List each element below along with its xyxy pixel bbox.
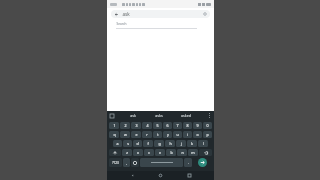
button[interactable]: 2 (120, 122, 130, 129)
staticText: y (167, 132, 169, 137)
button[interactable]: p (203, 131, 212, 138)
button[interactable]: d (133, 140, 142, 147)
button[interactable]: Keyboard settings (109, 113, 114, 118)
button[interactable]: Recent apps (186, 172, 193, 179)
button[interactable]: More options (207, 113, 212, 118)
staticText: t (157, 132, 159, 137)
button[interactable]: m (188, 149, 198, 156)
staticText: o (196, 132, 199, 137)
staticText: a (116, 141, 119, 146)
button[interactable]: ?123 (109, 158, 122, 167)
staticText: l (203, 141, 204, 146)
staticText: j (181, 141, 182, 146)
button[interactable]: asked (179, 112, 193, 119)
staticText: asked (181, 113, 191, 118)
staticText: c (148, 150, 150, 155)
staticText: ask (122, 11, 130, 17)
staticText: 9 (196, 123, 199, 128)
staticText: v (159, 150, 161, 155)
staticText: q (113, 132, 116, 137)
button[interactable]: 6 (163, 122, 172, 129)
button[interactable]: , (123, 158, 130, 167)
button[interactable]: b (166, 149, 176, 156)
button[interactable]: 9 (193, 122, 202, 129)
staticText: . (188, 160, 189, 165)
staticText: w (124, 132, 127, 137)
button[interactable]: 5 (153, 122, 162, 129)
button[interactable]: Home (157, 172, 164, 179)
button[interactable]: o (193, 131, 202, 138)
button[interactable]: 1 (109, 122, 119, 129)
button[interactable]: z (122, 149, 132, 156)
button[interactable]: t (153, 131, 162, 138)
staticText: 2 (124, 123, 127, 128)
button[interactable]: a (113, 140, 122, 147)
button[interactable]: Voice search (203, 12, 207, 16)
button[interactable]: e (131, 131, 141, 138)
button[interactable]: i (183, 131, 192, 138)
button[interactable]: Backspace (199, 149, 212, 156)
staticText: i (187, 132, 188, 137)
staticText: s (127, 141, 129, 146)
staticText: m (191, 150, 195, 155)
button[interactable]: v (155, 149, 165, 156)
button[interactable]: u (173, 131, 182, 138)
staticText: 7 (176, 123, 179, 128)
button[interactable]: w (120, 131, 130, 138)
button[interactable]: 7 (173, 122, 182, 129)
staticText: ?123 (112, 161, 119, 165)
button[interactable]: f (143, 140, 153, 147)
button[interactable]: g (154, 140, 164, 147)
button[interactable]: Enter (198, 158, 207, 167)
button[interactable]: k (187, 140, 197, 147)
staticText: f (147, 141, 149, 146)
button[interactable]: ask (128, 112, 138, 119)
button[interactable]: 4 (142, 122, 152, 129)
button[interactable]: j (176, 140, 186, 147)
button[interactable]: x (133, 149, 143, 156)
staticText: g (158, 141, 161, 146)
button[interactable]: s (123, 140, 132, 147)
button[interactable]: Emoji (131, 158, 139, 167)
staticText: b (170, 150, 173, 155)
staticText: e (135, 132, 138, 137)
button[interactable]: c (144, 149, 154, 156)
staticText: , (126, 160, 127, 165)
button[interactable]: q (109, 131, 119, 138)
button[interactable]: Space (140, 158, 183, 167)
staticText: u (176, 132, 179, 137)
staticText: z (126, 150, 128, 155)
staticText: k (191, 141, 193, 146)
staticText: n (181, 150, 184, 155)
button[interactable]: y (163, 131, 172, 138)
staticText: 8 (186, 123, 189, 128)
button[interactable]: 8 (183, 122, 192, 129)
button[interactable]: Shift (109, 149, 121, 156)
staticText: ask (130, 113, 136, 118)
staticText: 4 (146, 123, 149, 128)
button[interactable]: asks (153, 112, 165, 119)
staticText: h (169, 141, 172, 146)
button[interactable]: r (142, 131, 152, 138)
staticText: d (136, 141, 139, 146)
staticText: 6 (166, 123, 169, 128)
button[interactable]: Back (111, 10, 210, 18)
other: Back (114, 12, 119, 17)
staticText: Search (116, 22, 127, 26)
button[interactable]: . (184, 158, 192, 167)
staticText: asks (155, 113, 163, 118)
button[interactable]: 3 (131, 122, 141, 129)
button[interactable]: h (165, 140, 175, 147)
staticText: 5 (156, 123, 159, 128)
staticText: 3 (135, 123, 138, 128)
button[interactable]: n (177, 149, 187, 156)
staticText: 1 (113, 123, 116, 128)
button[interactable]: 0 (203, 122, 212, 129)
staticText: 0 (206, 123, 209, 128)
staticText: p (206, 132, 209, 137)
staticText: r (146, 132, 148, 137)
staticText: x (137, 150, 139, 155)
button[interactable]: Back (129, 172, 136, 179)
button[interactable]: l (198, 140, 208, 147)
